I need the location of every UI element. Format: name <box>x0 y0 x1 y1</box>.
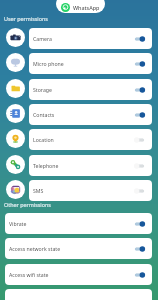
button[interactable] <box>5 289 152 300</box>
staticText: Telephone <box>33 162 59 169</box>
button[interactable]: Camera <box>0 28 158 49</box>
button[interactable]: Location <box>0 129 158 150</box>
button[interactable]: Vibrate <box>5 213 152 234</box>
button[interactable]: SMS <box>0 180 158 201</box>
staticText: Micro phone <box>33 60 64 67</box>
button[interactable]: Contacts <box>0 104 158 125</box>
staticText: Location <box>33 136 54 143</box>
staticText: Other permissions <box>4 201 51 208</box>
button[interactable]: WhatsApp <box>56 0 105 13</box>
button[interactable]: Storage <box>0 79 158 100</box>
button[interactable]: Access network state <box>5 238 152 259</box>
staticText: User permissions <box>4 15 48 22</box>
staticText: Vibrate <box>9 220 27 227</box>
button[interactable]: Telephone <box>0 155 158 176</box>
button[interactable]: Access wifi state <box>5 264 152 285</box>
staticText: Storage <box>33 86 52 93</box>
staticText: Access wifi state <box>9 271 49 278</box>
staticText: SMS <box>33 187 44 194</box>
staticText: WhatsApp <box>73 4 100 11</box>
staticText: Contacts <box>33 111 55 118</box>
staticText: Camera <box>33 35 52 42</box>
staticText: Access network state <box>9 245 61 252</box>
button[interactable]: Micro phone <box>0 53 158 74</box>
